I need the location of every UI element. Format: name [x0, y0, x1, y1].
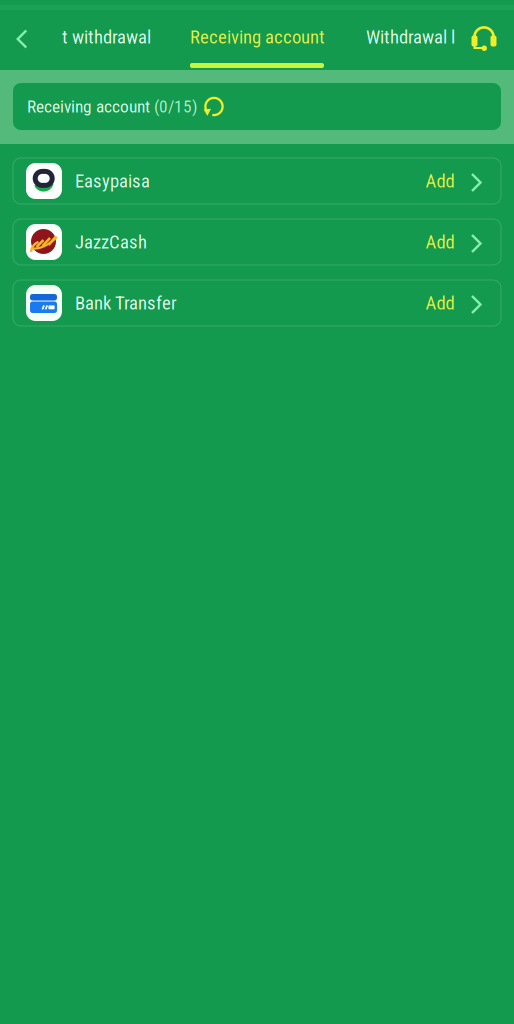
button[interactable]: t withdrawal	[62, 15, 151, 59]
staticText: t withdrawal	[62, 26, 151, 48]
staticText: Receiving account	[190, 26, 325, 48]
button[interactable]: Bank Transfer	[13, 280, 501, 326]
staticText: Add	[425, 292, 454, 314]
staticText: JazzCash	[75, 231, 147, 253]
staticText: (0/15)	[150, 96, 198, 117]
staticText: Easypaisa	[75, 170, 150, 192]
staticText: Add	[425, 231, 454, 253]
button[interactable]: Back	[3, 17, 41, 61]
button[interactable]: JazzCash	[13, 219, 501, 265]
button[interactable]: Withdrawal l	[366, 15, 455, 59]
button[interactable]: Receiving account	[190, 15, 325, 59]
button[interactable]: Refresh	[198, 95, 233, 117]
staticText: Withdrawal l	[366, 26, 455, 48]
staticText: Receiving account	[27, 96, 150, 117]
button[interactable]: Easypaisa	[13, 158, 501, 204]
button[interactable]: Customer support	[461, 13, 507, 61]
staticText: Bank Transfer	[75, 292, 177, 314]
staticText: Add	[425, 170, 454, 192]
